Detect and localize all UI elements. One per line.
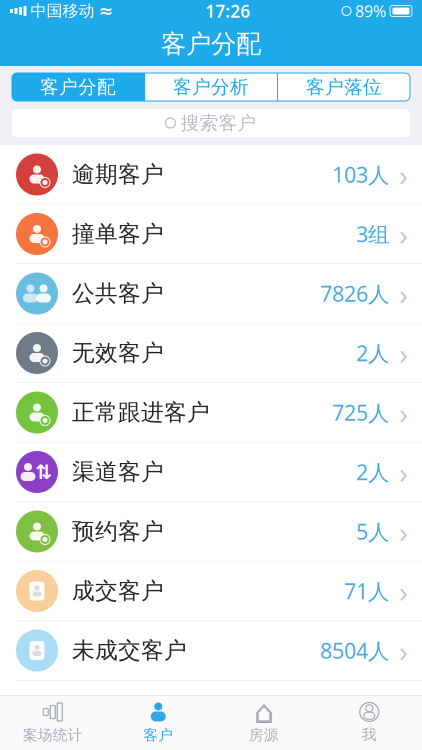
staticText: 5人 bbox=[356, 517, 389, 546]
staticText: 2人 bbox=[356, 339, 389, 367]
button[interactable]: 撞单客户 bbox=[0, 204, 422, 264]
staticText: 725人 bbox=[332, 398, 389, 427]
staticText: 89% bbox=[355, 0, 386, 22]
staticText: 成交客户 bbox=[72, 577, 164, 605]
button[interactable]: 无效客户 bbox=[0, 323, 422, 383]
button[interactable]: 预约客户 bbox=[0, 502, 422, 561]
button[interactable]: ⌂ bbox=[211, 696, 316, 750]
staticText: › bbox=[399, 631, 408, 670]
staticText: 逾期客户 bbox=[72, 161, 164, 188]
button[interactable]: 我 bbox=[316, 696, 422, 750]
staticText: › bbox=[399, 274, 408, 313]
staticText: 客户分配 bbox=[161, 28, 261, 59]
staticText: › bbox=[399, 333, 408, 372]
staticText: › bbox=[399, 571, 408, 610]
staticText: 2人 bbox=[356, 458, 389, 486]
staticText: 71人 bbox=[344, 577, 389, 605]
staticText: 无效客户 bbox=[72, 339, 164, 367]
button[interactable]: ⇅ bbox=[0, 442, 422, 502]
button[interactable]: 客户落位 bbox=[278, 73, 410, 101]
staticText: › bbox=[399, 393, 408, 432]
staticText: › bbox=[399, 452, 408, 491]
button[interactable]: 未成交客户 bbox=[0, 621, 422, 680]
staticText: 案场统计 bbox=[23, 726, 83, 744]
staticText: 未成交客户 bbox=[72, 637, 187, 664]
button[interactable]: 正常跟进客户 bbox=[0, 383, 422, 442]
staticText: 渠道客户 bbox=[72, 458, 164, 486]
staticText: ⇅ bbox=[35, 461, 52, 483]
staticText: 3组 bbox=[356, 220, 389, 248]
staticText: 正常跟进客户 bbox=[72, 399, 210, 426]
button[interactable]: 案场统计 bbox=[0, 696, 105, 750]
staticText: 7826人 bbox=[320, 279, 389, 308]
staticText: 中国移动 bbox=[30, 1, 94, 21]
staticText: 103人 bbox=[332, 160, 389, 189]
button[interactable]: 搜索客户 bbox=[0, 109, 422, 137]
staticText: › bbox=[399, 512, 408, 551]
button[interactable]: 客户分配 bbox=[12, 73, 144, 101]
staticText: 客户落位 bbox=[306, 75, 382, 98]
staticText: ⌂ bbox=[254, 694, 274, 730]
staticText: 客户分配 bbox=[40, 75, 116, 98]
staticText: 房源 bbox=[249, 726, 279, 744]
staticText: 我 bbox=[362, 725, 377, 743]
staticText: 撞单客户 bbox=[72, 220, 164, 248]
button[interactable]: 成交客户 bbox=[0, 561, 422, 621]
button[interactable]: 逾期客户 bbox=[0, 145, 422, 204]
button[interactable]: 客户 bbox=[105, 696, 211, 750]
staticText: 客户 bbox=[143, 726, 173, 744]
staticText: 8504人 bbox=[320, 636, 389, 665]
staticText: ≈ bbox=[98, 1, 113, 21]
staticText: 公共客户 bbox=[72, 280, 164, 307]
button[interactable]: 客户分析 bbox=[145, 73, 277, 101]
button[interactable]: 公共客户 bbox=[0, 264, 422, 323]
staticText: 客户分析 bbox=[173, 75, 249, 98]
staticText: 搜索客户 bbox=[180, 111, 256, 134]
staticText: › bbox=[399, 214, 408, 253]
staticText: › bbox=[399, 155, 408, 194]
staticText: 预约客户 bbox=[72, 518, 164, 545]
staticText: 17:26 bbox=[205, 0, 250, 22]
